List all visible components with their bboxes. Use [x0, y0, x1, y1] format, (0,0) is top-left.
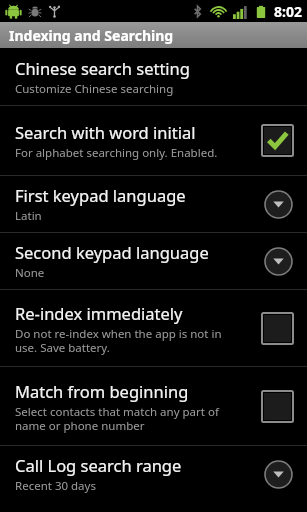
staticText: Select contacts that match any part of n… [15, 404, 219, 433]
button[interactable]: Chinese search setting [0, 48, 307, 105]
staticText: Latin [15, 208, 42, 224]
button[interactable]: Search with word initial [0, 106, 307, 175]
staticText: Second keypad language [15, 241, 209, 263]
button[interactable]: Unchecked [262, 391, 293, 422]
staticText: Do not re-index when the app is not in u… [15, 326, 222, 355]
staticText: Chinese search setting [15, 57, 190, 79]
button[interactable]: Unchecked [262, 313, 293, 344]
staticText: Re-index immediately [15, 302, 183, 324]
staticText: Customize Chinese searching [15, 81, 174, 97]
staticText: Search with word initial [15, 121, 196, 143]
staticText: Indexing and Searching [9, 26, 174, 45]
staticText: For alphabet searching only. Enabled. [15, 145, 218, 161]
staticText: 8:02 [274, 2, 302, 21]
button[interactable]: Checked [262, 125, 293, 156]
button[interactable]: Second keypad language [0, 233, 307, 289]
button[interactable]: Open list [264, 190, 293, 219]
button[interactable]: Open list [264, 460, 293, 489]
button[interactable]: First keypad language [0, 176, 307, 232]
button[interactable]: Re-index immediately [0, 290, 307, 366]
staticText: Call Log search range [15, 454, 182, 476]
staticText: Match from beginning [15, 380, 189, 402]
button[interactable]: Open list [264, 247, 293, 276]
staticText: Recent 30 days [15, 478, 96, 494]
button[interactable]: Call Log search range [0, 446, 307, 502]
staticText: First keypad language [15, 184, 186, 206]
button[interactable]: Match from beginning [0, 367, 307, 445]
staticText: None [15, 265, 45, 281]
